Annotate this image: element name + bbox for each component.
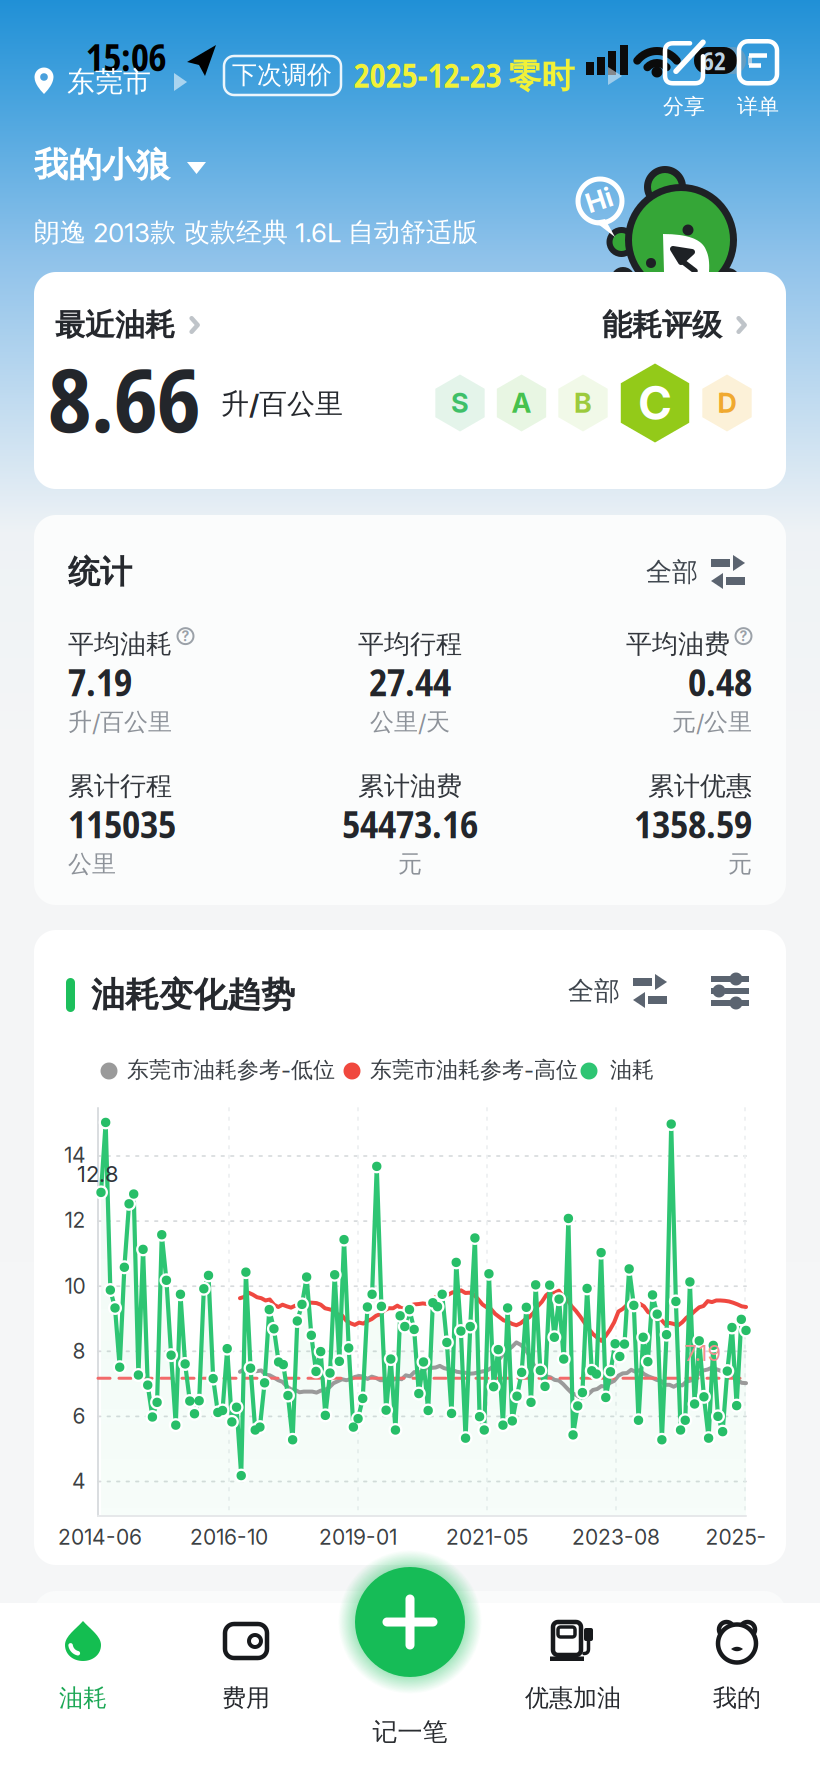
staticText: 平均油耗: [68, 628, 172, 660]
staticText: D: [717, 387, 736, 419]
staticText: 东莞市: [67, 64, 151, 100]
staticText: 8: [72, 1338, 85, 1364]
staticText: 元: [398, 849, 422, 879]
staticText: S: [451, 387, 469, 419]
staticText: 平均油费: [626, 628, 730, 660]
staticText: 累计油费: [358, 770, 462, 802]
button[interactable]: 分享: [652, 39, 716, 121]
staticText: 12.8: [77, 1161, 119, 1187]
staticText: 7.19: [68, 657, 132, 707]
button[interactable]: [338, 1550, 482, 1694]
staticText: C: [638, 375, 672, 431]
staticText: 2014-06: [58, 1524, 142, 1550]
staticText: 元: [728, 849, 752, 879]
staticText: 7.19: [684, 1340, 721, 1366]
staticText: 详单: [737, 93, 779, 120]
staticText: 费用: [222, 1683, 270, 1713]
staticText: 最近油耗: [55, 306, 175, 344]
staticText: 12: [64, 1207, 85, 1233]
staticText: 2025-: [705, 1524, 766, 1550]
staticText: 升/百公里: [221, 386, 343, 422]
button[interactable]: 能耗评级: [602, 306, 749, 344]
staticText: 27.44: [369, 657, 451, 707]
staticText: 2016-10: [190, 1524, 268, 1550]
staticText: 统计: [68, 552, 132, 592]
staticText: 东莞市油耗参考-低位: [127, 1056, 335, 1084]
staticText: 2025-12-23 零时: [353, 52, 574, 97]
staticText: 公里: [68, 849, 116, 879]
staticText: 分享: [663, 93, 705, 120]
staticText: 15:06: [85, 32, 167, 82]
staticText: 我的小狼: [34, 144, 170, 186]
staticText: Hi: [585, 184, 612, 216]
button[interactable]: 费用: [181, 1598, 311, 1716]
staticText: 公里/天: [370, 707, 450, 737]
staticText: 朗逸 2013款 改款经典 1.6L 自动舒适版: [34, 216, 478, 249]
staticText: 14: [64, 1142, 86, 1168]
staticText: 1358.59: [634, 799, 752, 849]
staticText: 8.66: [48, 338, 200, 458]
staticText: 全部: [568, 975, 620, 1007]
button[interactable]: 全部: [646, 553, 745, 591]
staticText: 我的: [713, 1683, 761, 1713]
staticText: 优惠加油: [525, 1683, 621, 1713]
staticText: 10: [64, 1273, 85, 1299]
staticText: 元/公里: [672, 707, 752, 737]
staticText: 115035: [68, 799, 176, 849]
staticText: 0.48: [688, 657, 752, 707]
staticText: 能耗评级: [602, 306, 722, 344]
staticText: 2021-05: [446, 1524, 528, 1550]
staticText: 2019-01: [319, 1524, 397, 1550]
button[interactable]: 详单: [726, 39, 790, 121]
button[interactable]: 下次调价: [224, 56, 624, 96]
button[interactable]: [711, 974, 749, 1010]
button[interactable]: 东莞市: [34, 56, 194, 108]
staticText: 油耗: [59, 1683, 107, 1713]
staticText: 东莞市油耗参考-高位: [370, 1056, 578, 1084]
staticText: 54473.16: [342, 799, 478, 849]
button[interactable]: 全部: [568, 972, 667, 1010]
button[interactable]: 我的: [672, 1598, 802, 1716]
staticText: 4: [72, 1468, 86, 1494]
staticText: 油耗: [610, 1056, 654, 1084]
button[interactable]: 我的小狼: [34, 143, 214, 189]
staticText: 2023-08: [572, 1524, 660, 1550]
staticText: 下次调价: [232, 59, 332, 91]
staticText: 油耗变化趋势: [91, 974, 295, 1016]
staticText: ?: [181, 628, 189, 645]
staticText: 平均行程: [358, 628, 462, 660]
button[interactable]: 最近油耗: [55, 306, 202, 344]
button[interactable]: 优惠加油: [508, 1598, 638, 1716]
staticText: 记一笔: [372, 1716, 447, 1748]
staticText: 升/百公里: [68, 707, 172, 737]
staticText: B: [574, 387, 592, 419]
staticText: 62: [702, 45, 726, 77]
staticText: A: [511, 387, 531, 419]
staticText: 全部: [646, 556, 698, 588]
button[interactable]: 油耗: [18, 1598, 148, 1716]
staticText: ?: [739, 628, 747, 645]
staticText: 累计优惠: [648, 770, 752, 802]
staticText: 累计行程: [68, 770, 172, 802]
staticText: 6: [72, 1403, 85, 1429]
